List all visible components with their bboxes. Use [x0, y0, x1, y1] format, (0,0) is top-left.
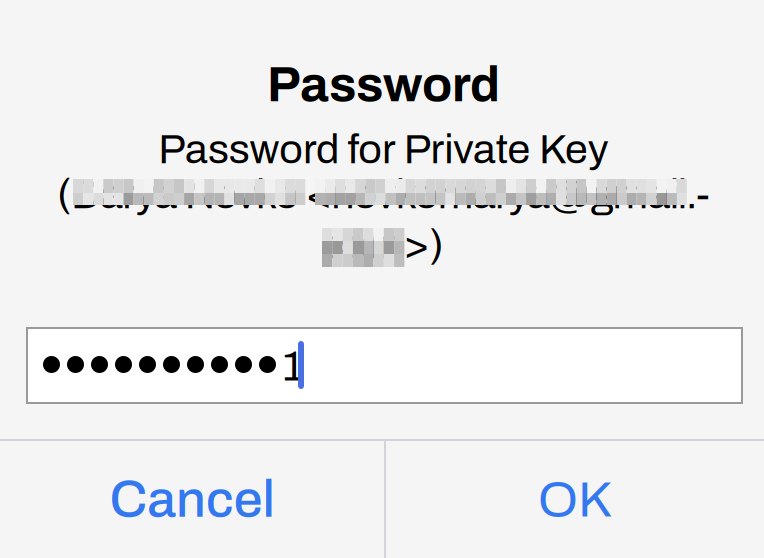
staticText: (Darya Novko <novkomarya@gmail.- — [57, 172, 710, 217]
staticText: com>) — [323, 222, 444, 267]
staticText: Password — [267, 58, 500, 112]
staticText: Cancel — [109, 471, 274, 528]
button[interactable]: OK — [386, 441, 764, 558]
staticText: OK — [538, 472, 612, 527]
staticText: 1 — [282, 343, 304, 389]
button[interactable]: Cancel — [0, 441, 384, 558]
staticText: Password for Private Key — [158, 127, 609, 172]
